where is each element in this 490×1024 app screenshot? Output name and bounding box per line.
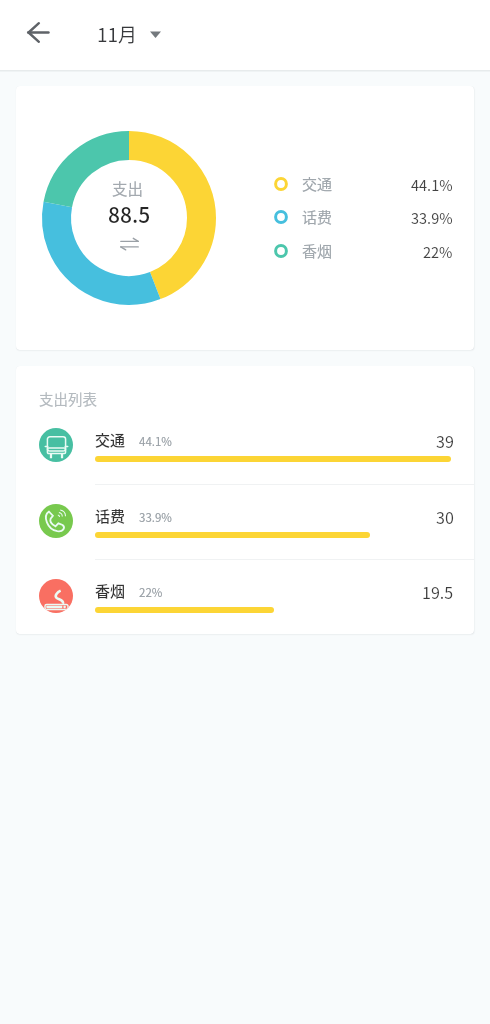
button[interactable]: 话费: [274, 206, 453, 228]
staticText: 香烟: [302, 240, 333, 262]
button[interactable]: Back: [15, 9, 61, 55]
button[interactable]: 交通: [274, 173, 453, 195]
staticText: 22%: [423, 241, 453, 262]
staticText: 30: [436, 505, 454, 528]
staticText: 19.5: [422, 580, 454, 603]
staticText: 支出: [112, 177, 144, 199]
button[interactable]: 香烟: [274, 240, 453, 262]
staticText: 22%: [139, 584, 163, 601]
staticText: 交通: [302, 173, 333, 195]
staticText: 香烟: [95, 580, 126, 602]
staticText: 39: [436, 429, 454, 452]
staticText: 88.5: [108, 199, 151, 229]
button[interactable]: 话费: [39, 499, 451, 543]
staticText: 支出列表: [39, 388, 97, 409]
staticText: 33.9%: [411, 207, 453, 228]
staticText: 44.1%: [139, 433, 172, 450]
button[interactable]: 交通: [39, 423, 451, 467]
button[interactable]: 11月: [91, 14, 171, 54]
staticText: 33.9%: [139, 509, 172, 526]
staticText: 交通: [95, 429, 126, 451]
button[interactable]: 香烟: [39, 574, 451, 618]
staticText: 11月: [97, 20, 138, 48]
staticText: 话费: [302, 206, 333, 228]
staticText: 44.1%: [411, 174, 453, 195]
staticText: 话费: [95, 505, 126, 527]
